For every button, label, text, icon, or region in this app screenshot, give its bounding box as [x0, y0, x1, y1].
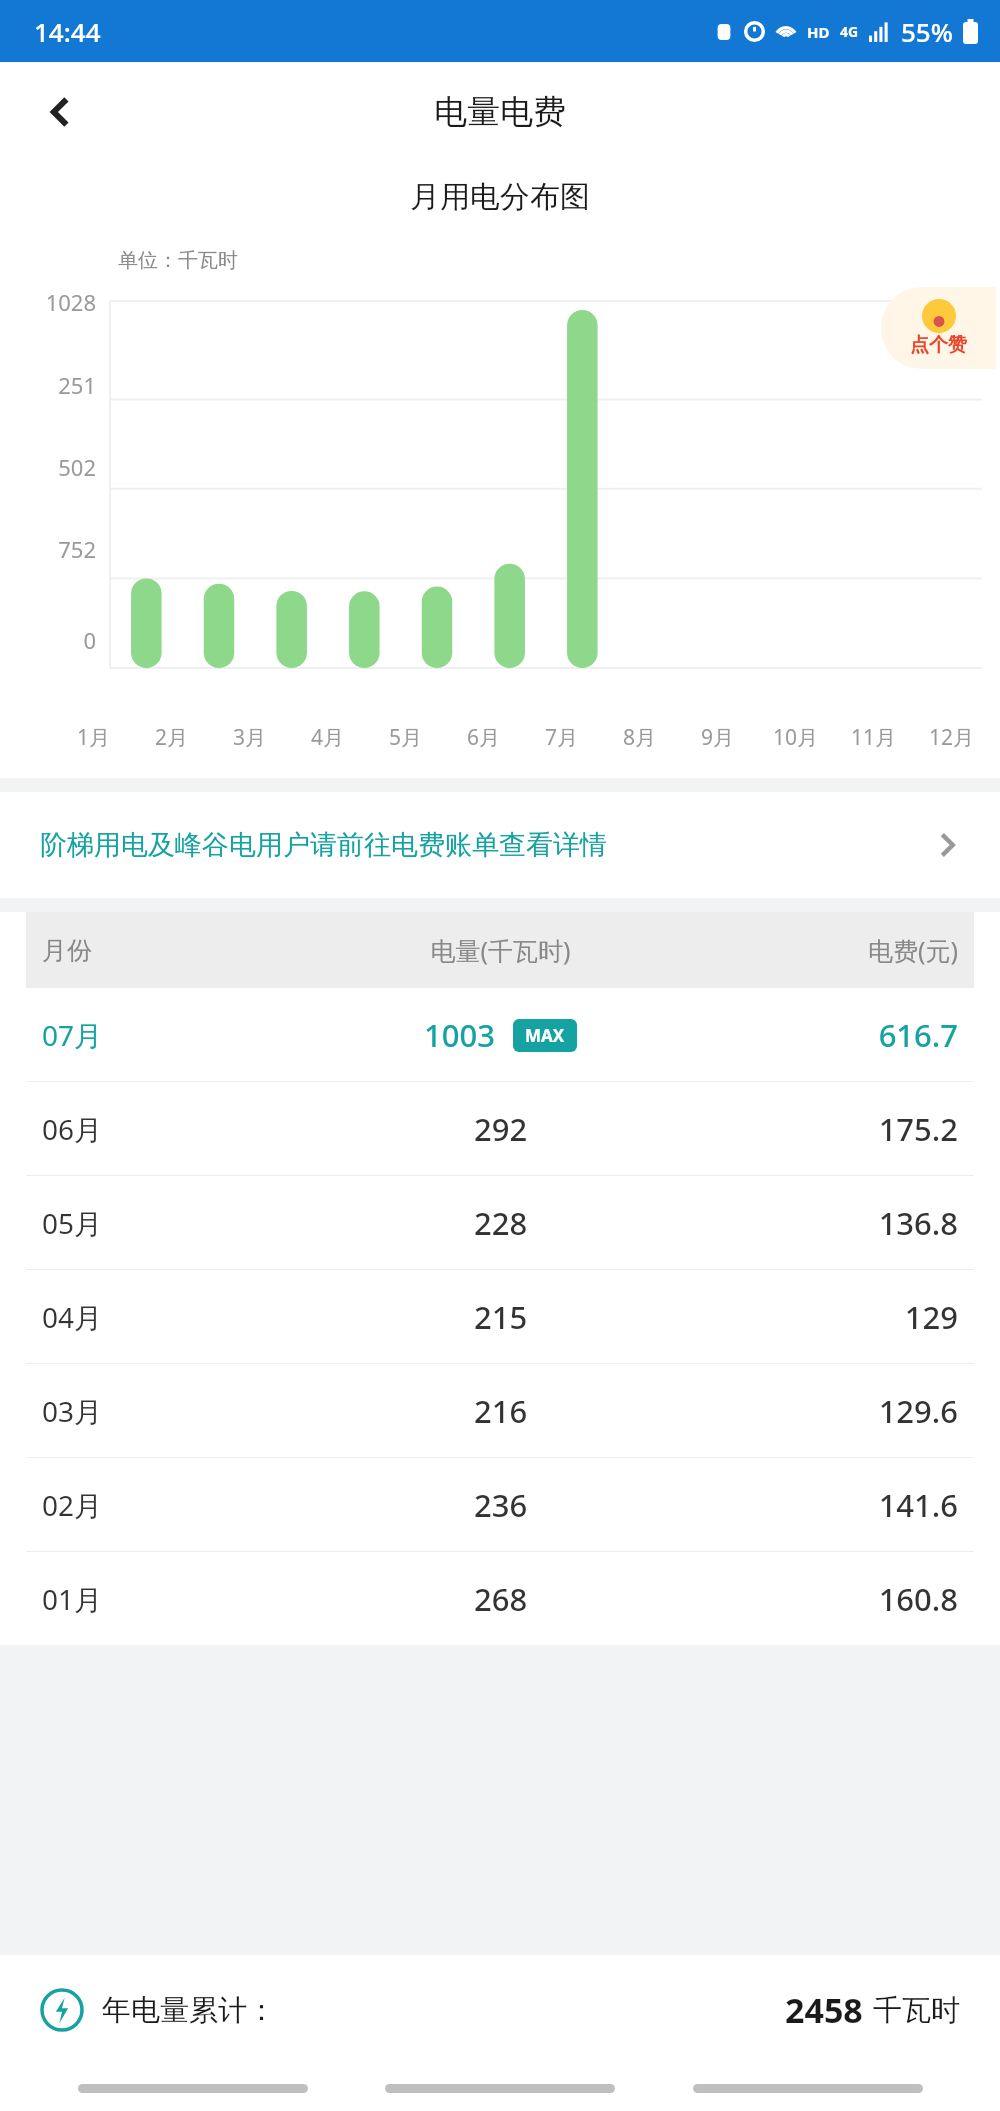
- staticText: 月用电分布图: [0, 178, 1000, 216]
- staticText: 12月: [929, 723, 975, 752]
- staticText: 216: [474, 1390, 528, 1432]
- button[interactable]: Navigation: [385, 2084, 615, 2093]
- staticText: 点个赞: [910, 333, 967, 357]
- staticText: 1月: [77, 723, 111, 752]
- staticText: 175.2: [689, 1108, 958, 1150]
- staticText: 6月: [467, 723, 501, 752]
- staticText: 单位：千瓦时: [118, 248, 238, 273]
- button[interactable]: 02月: [0, 1458, 1000, 1551]
- staticText: 251: [26, 370, 96, 400]
- staticText: 752: [26, 534, 96, 564]
- staticText: 电量电费: [434, 91, 566, 133]
- staticText: 06月: [42, 1110, 312, 1148]
- staticText: 502: [26, 452, 96, 482]
- button[interactable]: Back: [32, 83, 90, 141]
- staticText: 215: [474, 1296, 528, 1338]
- staticText: 3月: [233, 723, 267, 752]
- staticText: 阶梯用电及峰谷电用户请前往电费账单查看详情: [40, 828, 934, 862]
- button[interactable]: 07月: [0, 988, 1000, 1081]
- staticText: 02月: [42, 1486, 312, 1524]
- staticText: 4月: [311, 723, 345, 752]
- button[interactable]: 点个赞: [881, 287, 996, 369]
- staticText: 年电量累计：: [102, 1992, 276, 2029]
- button[interactable]: 阶梯用电及峰谷电用户请前往电费账单查看详情: [0, 792, 1000, 898]
- staticText: 电量(千瓦时): [312, 933, 689, 967]
- staticText: 11月: [851, 723, 897, 752]
- staticText: 14:44: [34, 14, 101, 49]
- staticText: 03月: [42, 1392, 312, 1430]
- staticText: 电费(元): [689, 933, 958, 967]
- staticText: 1028: [26, 287, 96, 317]
- staticText: 55%: [901, 14, 953, 49]
- staticText: 129.6: [689, 1390, 958, 1432]
- staticText: 月份: [42, 935, 312, 966]
- staticText: 0: [26, 625, 96, 655]
- staticText: 136.8: [689, 1202, 958, 1244]
- staticText: 04月: [42, 1298, 312, 1336]
- staticText: 07月: [42, 1016, 312, 1054]
- staticText: 01月: [42, 1580, 312, 1618]
- button[interactable]: Navigation: [78, 2084, 308, 2093]
- staticText: 160.8: [689, 1578, 958, 1620]
- button[interactable]: 03月: [0, 1364, 1000, 1457]
- staticText: 616.7: [689, 1014, 958, 1056]
- staticText: 268: [474, 1578, 528, 1620]
- button[interactable]: Navigation: [693, 2084, 923, 2093]
- button[interactable]: 04月: [0, 1270, 1000, 1363]
- staticText: 129: [689, 1296, 958, 1338]
- button[interactable]: 05月: [0, 1176, 1000, 1269]
- staticText: 1003: [424, 1014, 495, 1056]
- button[interactable]: 01月: [0, 1552, 1000, 1645]
- staticText: 5月: [389, 723, 423, 752]
- staticText: 千瓦时: [873, 1992, 960, 2029]
- staticText: 05月: [42, 1204, 312, 1242]
- staticText: HD: [807, 22, 830, 42]
- staticText: 236: [474, 1484, 528, 1526]
- staticText: 141.6: [689, 1484, 958, 1526]
- staticText: 10月: [773, 723, 819, 752]
- staticText: 4G: [840, 22, 859, 41]
- staticText: 7月: [545, 723, 579, 752]
- button[interactable]: 06月: [0, 1082, 1000, 1175]
- staticText: 9月: [701, 723, 735, 752]
- staticText: 228: [474, 1202, 528, 1244]
- staticText: 2月: [155, 723, 189, 752]
- staticText: MAX: [525, 1024, 565, 1047]
- staticText: 8月: [623, 723, 657, 752]
- staticText: 292: [474, 1108, 528, 1150]
- staticText: 2458: [785, 1987, 863, 2033]
